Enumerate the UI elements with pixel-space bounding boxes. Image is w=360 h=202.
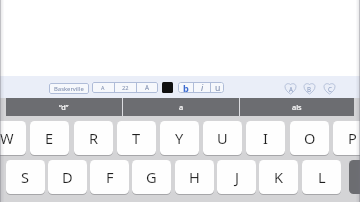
staticText: A: [289, 85, 293, 93]
staticText: F: [106, 167, 114, 187]
staticText: S: [21, 167, 30, 187]
staticText: O: [304, 128, 316, 148]
button[interactable]: S: [6, 160, 45, 194]
button[interactable]: U: [203, 121, 242, 155]
staticText: i: [201, 82, 204, 93]
button[interactable]: F: [90, 160, 129, 194]
button[interactable]: H: [175, 160, 214, 194]
staticText: a: [179, 102, 184, 112]
staticText: als: [292, 102, 302, 112]
staticText: A: [145, 83, 150, 92]
button[interactable]: Style B: [304, 83, 315, 94]
staticText: T: [132, 128, 141, 148]
button[interactable]: b: [178, 82, 193, 93]
button[interactable]: R: [74, 121, 113, 155]
button[interactable]: “d”: [6, 98, 122, 116]
staticText: “d”: [59, 102, 69, 112]
staticText: C: [328, 85, 332, 93]
button[interactable]: I: [246, 121, 285, 155]
button[interactable]: T: [117, 121, 156, 155]
button[interactable]: u: [211, 82, 224, 93]
button[interactable]: Y: [160, 121, 199, 155]
staticText: U: [217, 128, 228, 148]
staticText: Baskerville: [54, 85, 84, 93]
staticText: A: [101, 84, 105, 91]
staticText: b: [183, 82, 189, 93]
button[interactable]: Baskerville: [49, 83, 89, 94]
button[interactable]: O: [290, 121, 329, 155]
button[interactable]: K: [259, 160, 298, 194]
button[interactable]: a: [123, 98, 239, 116]
button[interactable]: P: [333, 121, 360, 155]
button[interactable]: Style C: [324, 83, 335, 94]
staticText: 22: [122, 84, 129, 92]
staticText: W: [0, 128, 14, 148]
staticText: D: [62, 167, 73, 187]
button[interactable]: L: [302, 160, 341, 194]
button[interactable]: i: [194, 82, 210, 93]
button[interactable]: W: [0, 121, 26, 155]
button[interactable]: Text colour: [162, 82, 173, 93]
staticText: u: [215, 82, 221, 93]
button[interactable]: G: [132, 160, 171, 194]
staticText: B: [307, 85, 312, 93]
staticText: G: [146, 167, 157, 187]
button[interactable]: D: [48, 160, 87, 194]
button[interactable]: 22: [115, 82, 136, 93]
button[interactable]: J: [217, 160, 256, 194]
staticText: J: [235, 167, 239, 187]
staticText: E: [45, 128, 54, 148]
button[interactable]: E: [30, 121, 69, 155]
staticText: R: [89, 128, 99, 148]
button[interactable]: Return: [349, 160, 360, 194]
staticText: I: [263, 128, 268, 148]
staticText: P: [348, 128, 357, 148]
staticText: H: [189, 167, 200, 187]
staticText: K: [274, 167, 284, 187]
button[interactable]: als: [240, 98, 354, 116]
button[interactable]: A: [92, 82, 114, 93]
staticText: Y: [175, 128, 184, 148]
staticText: L: [318, 167, 326, 187]
button[interactable]: A: [137, 82, 158, 93]
button[interactable]: Style A: [285, 83, 296, 94]
